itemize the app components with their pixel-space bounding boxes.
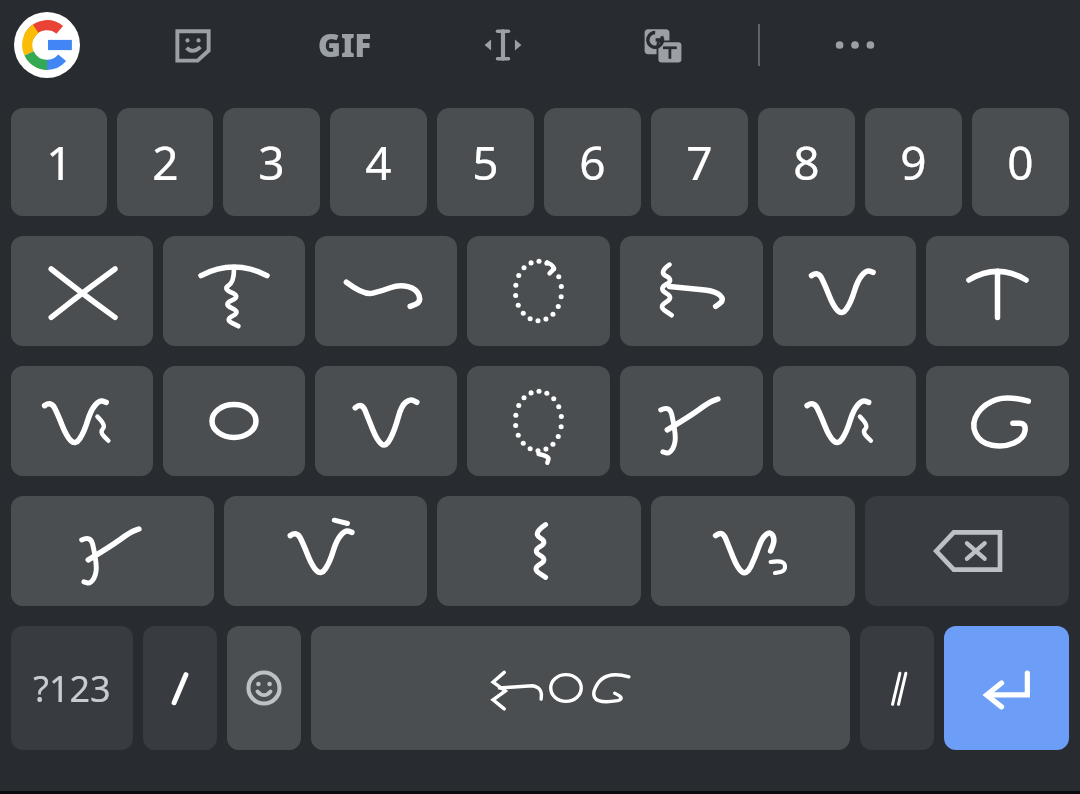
staticText: 8	[793, 131, 820, 194]
button[interactable]: ?123	[11, 626, 133, 750]
button[interactable]: 1	[11, 108, 107, 216]
button[interactable]: thaa	[773, 366, 916, 476]
staticText: 3	[258, 131, 285, 194]
staticText: 5	[472, 131, 499, 194]
button[interactable]: 4	[330, 108, 427, 216]
button[interactable]: 0	[972, 108, 1069, 216]
button[interactable]: seenu	[437, 496, 641, 606]
button[interactable]: 9	[865, 108, 962, 216]
button[interactable]: GIF	[318, 24, 372, 66]
button[interactable]: 5	[437, 108, 534, 216]
button[interactable]: laamu	[926, 366, 1069, 476]
button[interactable]: Text editing	[468, 10, 538, 80]
button[interactable]: 3	[223, 108, 320, 216]
button[interactable]: vaavu	[315, 366, 457, 476]
button[interactable]: 8	[758, 108, 855, 216]
button[interactable]: shaviyani	[163, 236, 305, 346]
button[interactable]: Google	[14, 12, 80, 78]
button[interactable]: gaafu	[11, 496, 214, 606]
staticText: 7	[686, 131, 713, 194]
button[interactable]: meemu	[163, 366, 305, 476]
button[interactable]: slash	[143, 626, 217, 750]
button[interactable]: baa	[620, 236, 763, 346]
button[interactable]: dhaalu	[620, 366, 763, 476]
staticText: 6	[579, 131, 606, 194]
button[interactable]: gnaviyani	[224, 496, 427, 606]
staticText: 9	[900, 131, 927, 194]
staticText: 4	[365, 131, 392, 194]
staticText: 1	[46, 131, 73, 194]
button[interactable]: noonu	[315, 236, 457, 346]
button[interactable]: double slash	[860, 626, 934, 750]
button[interactable]: 6	[544, 108, 641, 216]
staticText: 2	[152, 131, 179, 194]
button[interactable]: Enter	[944, 626, 1069, 750]
button[interactable]: Backspace	[865, 496, 1069, 606]
button[interactable]: 2	[117, 108, 213, 216]
button[interactable]: 7	[651, 108, 748, 216]
button[interactable]: Emoji	[227, 626, 301, 750]
staticText: 0	[1007, 131, 1034, 194]
button[interactable]: More options	[820, 10, 890, 80]
button[interactable]: daviyani	[651, 496, 855, 606]
button[interactable]: kaafu	[926, 236, 1069, 346]
button[interactable]: Space	[311, 626, 850, 750]
button[interactable]: Stickers	[158, 10, 228, 80]
button[interactable]: raa	[467, 236, 610, 346]
button[interactable]: Translate	[628, 10, 698, 80]
staticText: ?123	[33, 664, 111, 713]
button[interactable]: haa	[11, 236, 153, 346]
button[interactable]: alifu	[11, 366, 153, 476]
button[interactable]: faafu	[467, 366, 610, 476]
button[interactable]: lhaviyani	[773, 236, 916, 346]
